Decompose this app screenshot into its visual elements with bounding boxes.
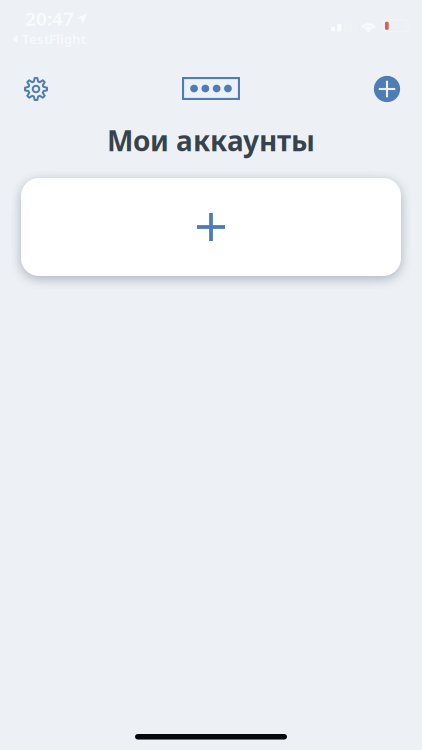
button[interactable]: Passcode bbox=[174, 66, 248, 110]
button[interactable]: Settings bbox=[12, 67, 60, 111]
staticText: TestFlight bbox=[22, 30, 86, 48]
button[interactable]: Add account bbox=[363, 67, 411, 111]
button[interactable]: Add account bbox=[21, 178, 401, 276]
staticText: Мои аккаунты bbox=[107, 122, 315, 159]
staticText: 20:47 bbox=[25, 6, 74, 31]
